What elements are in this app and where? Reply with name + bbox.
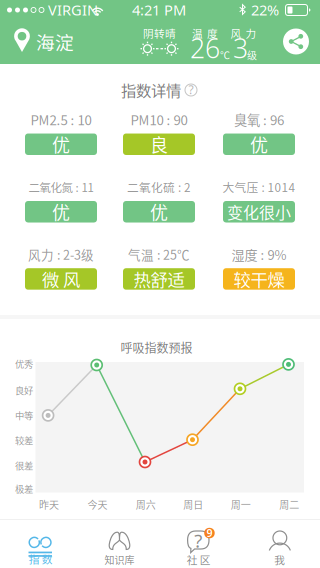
staticText: 中等	[15, 408, 33, 422]
staticText: 优	[52, 131, 70, 157]
staticText: 指数详情	[121, 79, 181, 101]
staticText: 呼吸指数预报	[120, 339, 192, 356]
staticText: 良好	[15, 383, 33, 397]
staticText: 3	[233, 30, 248, 66]
staticText: ?	[194, 528, 202, 553]
staticText: 二氧化氮 : 11	[28, 179, 93, 195]
staticText: 社 区	[187, 552, 211, 567]
staticText: 级	[247, 48, 257, 62]
staticText: 二氧化硫 : 2	[127, 178, 191, 195]
staticText: 臭氧 : 96	[234, 110, 284, 129]
staticText: 周六	[136, 497, 156, 512]
staticText: 气温 : 25℃	[128, 245, 190, 263]
staticText: 微 风	[42, 266, 80, 291]
staticText: 优	[52, 199, 70, 225]
button[interactable]: Share	[283, 28, 309, 54]
staticText: 周二	[279, 497, 299, 512]
staticText: 周日	[183, 497, 203, 512]
staticText: 很差	[15, 459, 33, 472]
staticText: 较干燥	[233, 266, 284, 291]
staticText: 热舒适	[133, 266, 184, 291]
button[interactable]: 指 数	[0, 520, 80, 568]
staticText: 风力 : 2-3级	[28, 245, 94, 263]
staticText: 22%	[251, 0, 279, 19]
staticText: 指 数	[29, 551, 53, 567]
staticText: 知识库	[104, 552, 134, 567]
button[interactable]: 我	[240, 520, 320, 568]
staticText: 我	[274, 552, 285, 567]
staticText: 26	[190, 30, 220, 66]
staticText: 4:21 PM	[132, 0, 186, 19]
staticText: 周一	[231, 497, 251, 512]
staticText: 风 力	[230, 25, 256, 41]
staticText: 优	[150, 199, 168, 225]
staticText: VIRGIN	[48, 0, 98, 19]
staticText: 今天	[87, 497, 107, 512]
button[interactable]: ?	[160, 520, 240, 568]
button[interactable]: 海淀	[14, 20, 86, 64]
staticText: 极差	[15, 482, 33, 495]
staticText: ?	[188, 81, 193, 97]
staticText: 阴转晴	[143, 25, 176, 41]
staticText: PM2.5 : 10	[30, 110, 91, 129]
staticText: ℃	[220, 48, 230, 62]
button[interactable]: 知识库	[80, 520, 160, 568]
staticText: 9	[206, 526, 212, 540]
staticText: 较差	[15, 433, 33, 447]
staticText: 良	[150, 131, 168, 157]
staticText: 昨天	[39, 497, 59, 512]
staticText: 海淀	[36, 28, 74, 55]
staticText: 湿度 : 9%	[231, 245, 286, 264]
staticText: 优秀	[15, 357, 33, 370]
staticText: 大气压 : 1014	[222, 178, 295, 195]
staticText: 温 度	[192, 25, 218, 41]
staticText: 优	[250, 131, 268, 157]
staticText: PM10 : 90	[130, 110, 187, 129]
staticText: 变化很小	[227, 200, 291, 223]
